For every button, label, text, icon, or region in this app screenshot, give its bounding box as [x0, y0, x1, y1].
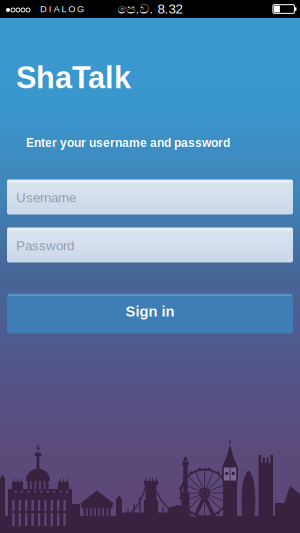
staticText: DIALOG [40, 4, 84, 14]
staticText: Username [16, 190, 76, 205]
staticText: Password [16, 238, 74, 253]
staticText: පෙ.ව. 8.32 [117, 2, 182, 16]
staticText: Sign in [125, 303, 174, 319]
button[interactable]: Password [7, 227, 293, 262]
staticText: Enter your username and password [26, 136, 230, 149]
staticText: ShaTalk [16, 61, 131, 94]
button[interactable]: Username [7, 179, 293, 214]
button[interactable]: Sign in [7, 293, 293, 333]
